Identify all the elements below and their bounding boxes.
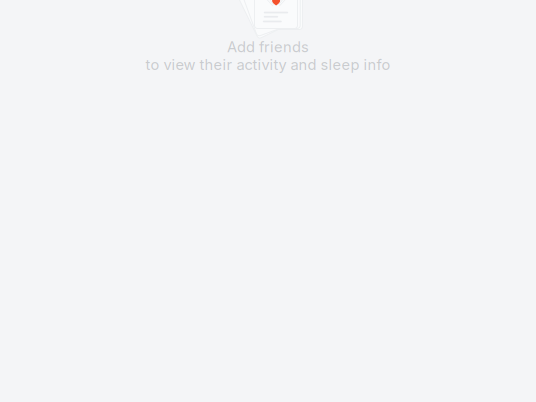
staticText: to view their activity and sleep info: [145, 56, 390, 73]
staticText: Add friends: [227, 38, 309, 56]
